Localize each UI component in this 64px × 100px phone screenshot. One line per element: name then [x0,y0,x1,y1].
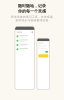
staticText: 简单高效的笔记工具，支持多端 [11,15,53,18]
button[interactable]: Note item [15,34,34,38]
staticText: 随时随地，记录 [18,3,46,8]
button[interactable]: Sync on [45,51,48,53]
button[interactable]: Note item [15,38,34,43]
staticText: 实时同步与智能整理归档 [15,19,48,22]
staticText: 你的每一个灵感 [18,9,46,13]
button[interactable]: Get started [38,54,48,57]
button[interactable]: Note item [15,43,34,47]
button[interactable]: Note item [15,47,34,51]
